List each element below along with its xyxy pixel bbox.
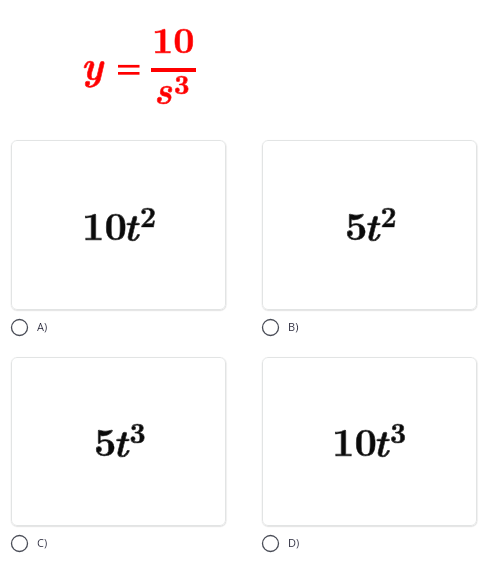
staticText: 10t3	[332, 411, 407, 468]
button[interactable]: Select answer C)	[11, 535, 48, 552]
button[interactable]: Answer option B)	[262, 140, 477, 310]
staticText: 5t3	[94, 411, 146, 468]
staticText: s3	[154, 61, 190, 115]
staticText: 10	[152, 11, 195, 64]
button[interactable]: Select answer D)	[262, 535, 300, 552]
button[interactable]: Select answer A)	[11, 319, 48, 336]
staticText: s3	[154, 61, 190, 115]
staticText: y	[81, 34, 103, 91]
staticText: 5t3	[94, 411, 146, 468]
staticText: 10	[152, 11, 195, 64]
staticText: 10t3	[332, 411, 407, 468]
button[interactable]: Answer option D)	[262, 357, 477, 526]
button[interactable]: Select answer B)	[262, 319, 299, 336]
staticText: 10t2	[82, 195, 157, 252]
staticText: C)	[37, 535, 48, 550]
staticText: 10t2	[82, 195, 157, 252]
staticText: B)	[288, 319, 299, 334]
staticText: 5t2	[345, 195, 397, 252]
staticText: y	[81, 34, 103, 91]
button[interactable]: Answer option C)	[11, 357, 226, 526]
button[interactable]: Answer option A)	[11, 140, 226, 310]
staticText: D)	[288, 535, 300, 550]
staticText: A)	[37, 319, 48, 334]
staticText: 5t2	[345, 195, 397, 252]
